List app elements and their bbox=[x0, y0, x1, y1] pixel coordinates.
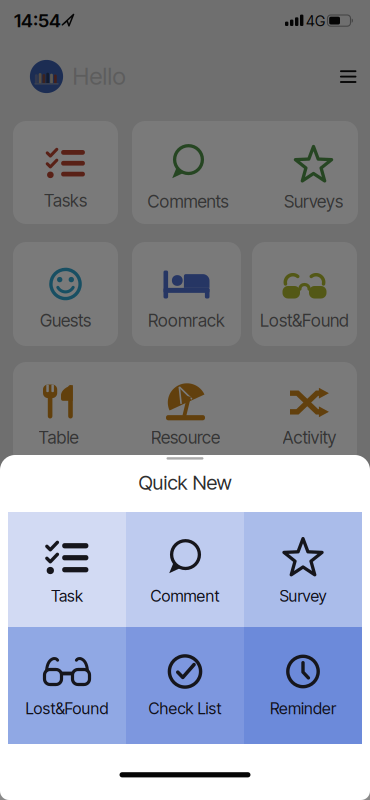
button[interactable]: Comments bbox=[138, 121, 238, 224]
staticText: Lost&Found bbox=[260, 310, 349, 331]
staticText: Activity bbox=[282, 427, 336, 448]
button[interactable]: Menu bbox=[340, 70, 356, 83]
staticText: Tasks bbox=[44, 190, 87, 211]
staticText: 4G bbox=[306, 12, 325, 29]
button[interactable]: Lost&Found bbox=[8, 627, 126, 744]
button[interactable]: Roomrack bbox=[132, 242, 241, 346]
button[interactable]: Profile bbox=[30, 60, 63, 93]
staticText: Surveys bbox=[284, 191, 343, 212]
staticText: Resource bbox=[151, 427, 220, 448]
staticText: Guests bbox=[40, 310, 91, 331]
button[interactable]: Comment bbox=[126, 512, 244, 627]
button[interactable]: Guests bbox=[13, 242, 118, 346]
button[interactable]: Resource bbox=[135, 362, 235, 465]
staticText: Comment bbox=[150, 587, 219, 605]
staticText: Table bbox=[38, 427, 78, 448]
staticText: Hello bbox=[72, 62, 125, 90]
button[interactable]: Table bbox=[13, 362, 103, 465]
button[interactable]: Reminder bbox=[244, 627, 362, 744]
button[interactable]: Surveys bbox=[268, 121, 358, 224]
staticText: Quick New bbox=[138, 471, 231, 494]
staticText: Task bbox=[51, 587, 83, 605]
button[interactable]: Survey bbox=[244, 512, 362, 627]
staticText: Reminder bbox=[270, 699, 336, 718]
button[interactable]: Check List bbox=[126, 627, 244, 744]
staticText: Roomrack bbox=[148, 310, 225, 331]
staticText: Check List bbox=[148, 699, 221, 718]
staticText: 14:54 bbox=[14, 9, 61, 31]
staticText: Survey bbox=[279, 587, 326, 605]
button[interactable]: Lost&Found bbox=[252, 242, 357, 346]
staticText: Comments bbox=[147, 191, 228, 212]
staticText: Lost&Found bbox=[25, 699, 108, 718]
button[interactable]: Tasks bbox=[13, 121, 118, 224]
button[interactable]: Task bbox=[8, 512, 126, 627]
button[interactable]: Activity bbox=[264, 362, 354, 465]
